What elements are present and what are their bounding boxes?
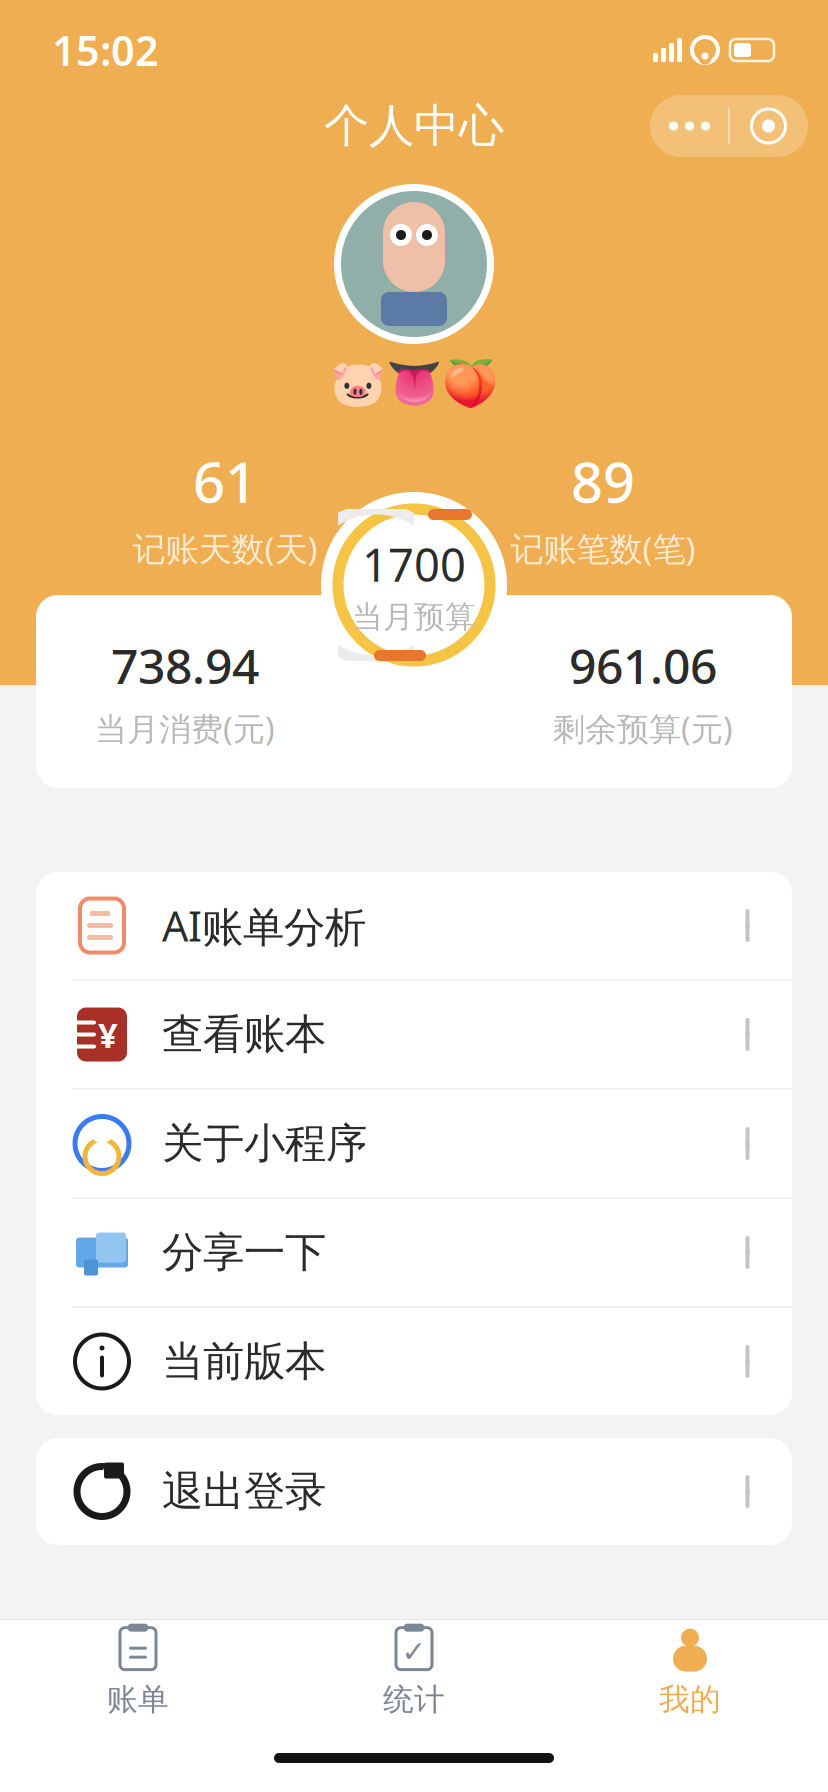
staticText: 738.94 [111, 633, 259, 697]
staticText: ¥ [98, 1011, 118, 1057]
staticText: 1700 [362, 534, 466, 594]
button[interactable]: ✓ [276, 1620, 552, 1724]
button[interactable]: 分享一下 [36, 1199, 792, 1306]
staticText: 当前版本 [162, 1336, 326, 1387]
staticText: 15:02 [52, 23, 159, 77]
staticText: 🐷👅🍑 [330, 358, 498, 410]
staticText: 统计 [383, 1681, 445, 1718]
button[interactable]: 关于小程序 [36, 1090, 792, 1197]
button[interactable]: AI账单分析 [36, 872, 792, 979]
staticText: 61 [193, 444, 257, 518]
staticText: 分享一下 [162, 1227, 326, 1278]
staticText: 记账天数(天) [132, 526, 317, 570]
button[interactable]: ¥ [36, 981, 792, 1088]
staticText: AI账单分析 [162, 898, 366, 953]
staticText: 账单 [107, 1681, 169, 1718]
staticText: 89 [571, 444, 635, 518]
staticText: 查看账本 [162, 1009, 326, 1060]
staticText: 961.06 [569, 633, 717, 697]
button[interactable]: 我的 [552, 1620, 828, 1724]
button[interactable]: 当前版本 [36, 1308, 792, 1415]
button[interactable]: More options [650, 95, 808, 157]
staticText: 当月消费(元) [95, 707, 275, 750]
button[interactable]: 账单 [0, 1620, 276, 1724]
staticText: 当月预算 [352, 598, 476, 636]
staticText: 退出登录 [162, 1466, 326, 1517]
button[interactable]: 退出登录 [36, 1438, 792, 1545]
staticText: 记账笔数(笔) [510, 526, 695, 570]
staticText: 剩余预算(元) [553, 707, 733, 750]
staticText: ✓ [401, 1635, 426, 1668]
staticText: 关于小程序 [162, 1118, 367, 1169]
staticText: 我的 [659, 1681, 721, 1718]
staticText: 个人中心 [324, 98, 504, 154]
